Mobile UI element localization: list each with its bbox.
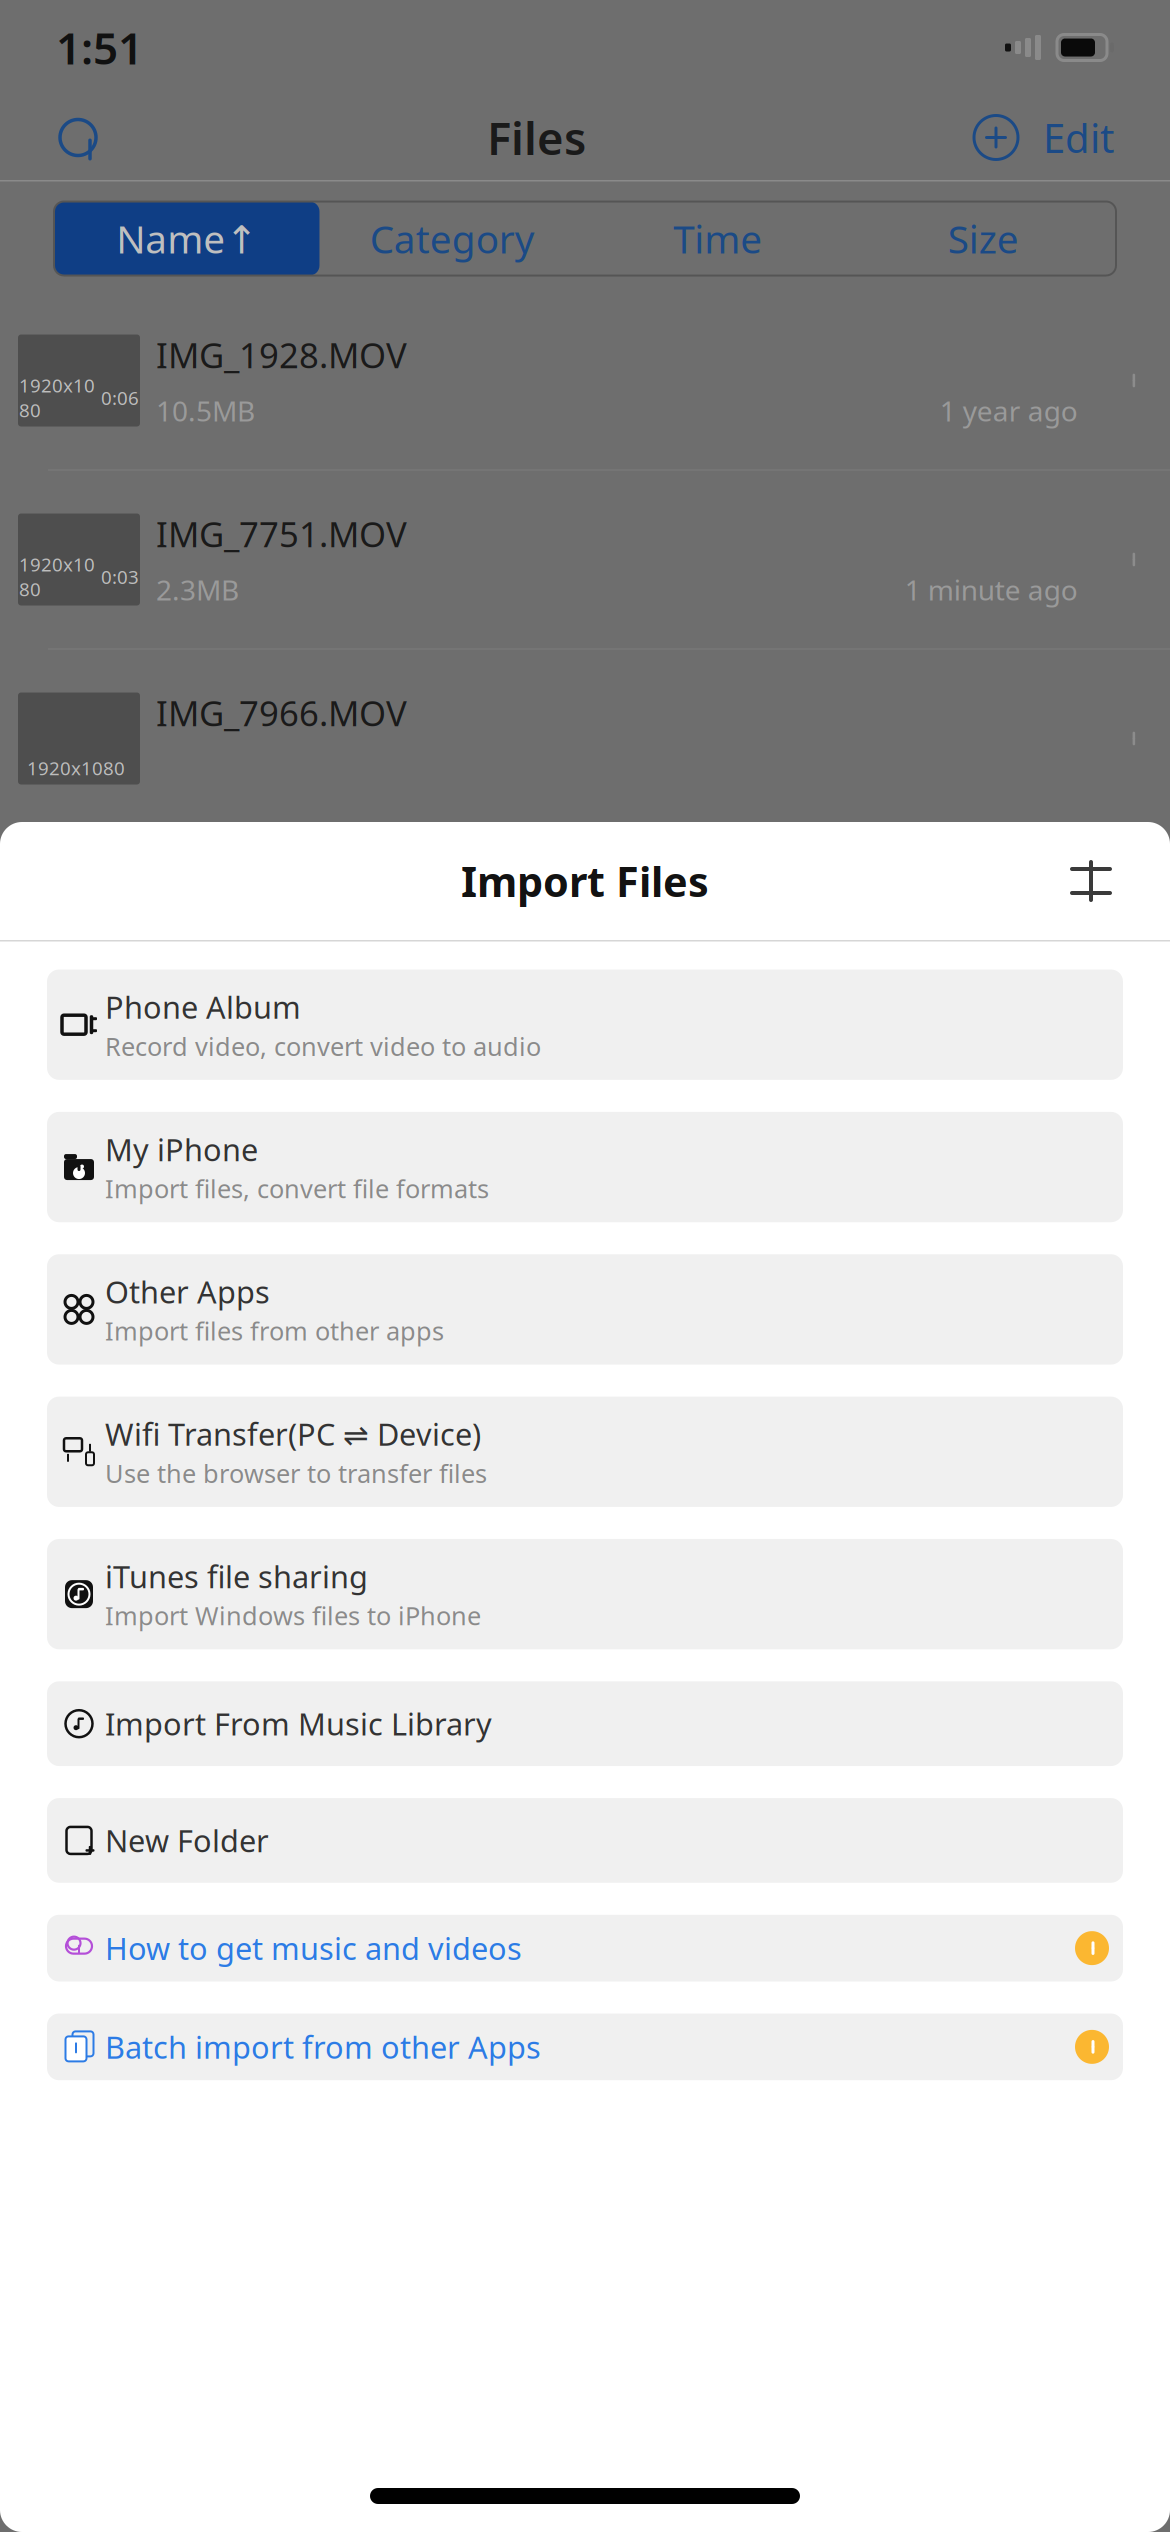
button[interactable]: Wifi Transfer(PC ⇌ Device) — [47, 1397, 1123, 1507]
button[interactable]: Phone Album — [47, 969, 1123, 1080]
button[interactable]: Edit — [1023, 111, 1118, 164]
button[interactable]: iTunes file sharing — [47, 1539, 1123, 1649]
staticText: 1920x1080 — [19, 552, 95, 601]
button[interactable]: Batch import from other Apps — [47, 2013, 1123, 2080]
staticText: 1 minute ago — [905, 571, 1078, 608]
staticText: 0:03 — [101, 564, 139, 589]
staticText: How to get music and videos — [105, 1928, 522, 1968]
staticText: 0:06 — [101, 385, 139, 410]
staticText: Wifi Transfer(PC ⇌ Device) — [105, 1414, 481, 1454]
button[interactable]: New Folder — [47, 1798, 1123, 1883]
staticText: Other Apps — [105, 1271, 270, 1312]
button[interactable]: Close — [1062, 852, 1120, 910]
staticText: IMG_1928.MOV — [156, 332, 407, 378]
button[interactable]: My iPhone — [47, 1112, 1123, 1222]
staticText: Files — [487, 107, 586, 168]
button[interactable]: Search — [52, 111, 104, 163]
staticText: Import files, convert file formats — [105, 1172, 489, 1205]
staticText: 1920x1080 — [19, 373, 95, 422]
button[interactable]: How to get music and videos — [47, 1915, 1123, 1981]
staticText: New Folder — [105, 1820, 269, 1861]
staticText: Import Windows files to iPhone — [105, 1599, 481, 1632]
staticText: Edit — [1043, 111, 1114, 164]
staticText: IMG_7751.MOV — [156, 511, 407, 557]
staticText: Record video, convert video to audio — [105, 1029, 541, 1063]
staticText: 10.5MB — [156, 392, 255, 429]
staticText: My iPhone — [105, 1129, 258, 1170]
staticText: 1:51 — [56, 18, 143, 77]
staticText: Import files from other apps — [105, 1314, 444, 1348]
button[interactable]: Import From Music Library — [47, 1681, 1123, 1766]
staticText: Category — [370, 213, 535, 264]
button[interactable]: Other Apps — [47, 1254, 1123, 1365]
staticText: Batch import from other Apps — [105, 2026, 541, 2067]
staticText: 1920x1080 — [27, 756, 125, 780]
staticText: Import Files — [461, 854, 709, 908]
staticText: Name↑ — [116, 213, 257, 264]
staticText: Use the browser to transfer files — [105, 1456, 487, 1490]
staticText: IMG_7966.MOV — [156, 690, 407, 736]
staticText: Time — [673, 213, 762, 264]
staticText: iTunes file sharing — [105, 1556, 368, 1597]
staticText: Import From Music Library — [105, 1703, 492, 1744]
button[interactable]: Add — [969, 110, 1023, 164]
staticText: Size — [948, 213, 1019, 264]
staticText: 2.3MB — [156, 571, 239, 608]
staticText: 1 year ago — [940, 392, 1078, 429]
staticText: Phone Album — [105, 986, 301, 1027]
